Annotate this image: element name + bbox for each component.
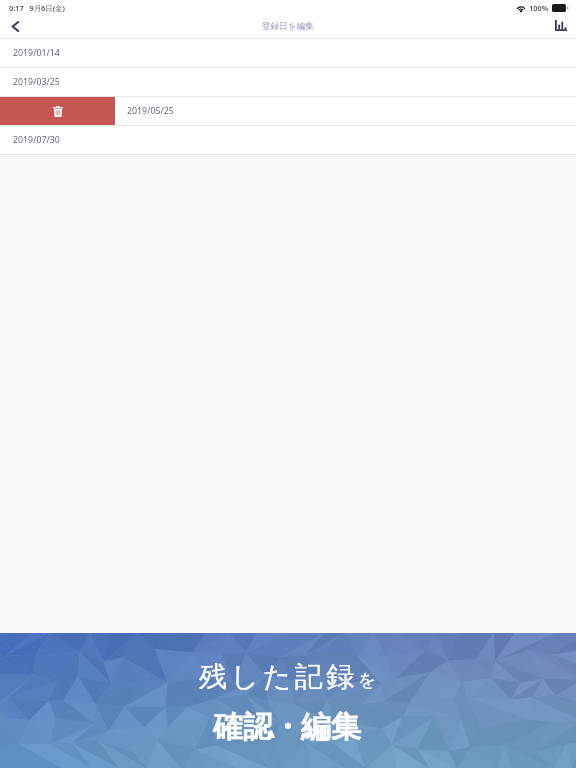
button[interactable]: 2019/03/25 bbox=[0, 68, 576, 96]
button[interactable]: 2019/07/30 bbox=[0, 126, 576, 154]
staticText: 2019/03/25 bbox=[13, 76, 60, 88]
button[interactable]: 2019/05/25 bbox=[115, 97, 576, 125]
button[interactable]: Statistics bbox=[546, 16, 576, 38]
staticText: 2019/05/25 bbox=[127, 105, 174, 117]
staticText: 編集 bbox=[301, 708, 361, 746]
button[interactable]: 2019/01/14 bbox=[0, 39, 576, 67]
button[interactable]: Delete bbox=[0, 97, 115, 125]
button[interactable]: 残した記録を確認・編集 bbox=[0, 633, 576, 768]
button[interactable]: Back bbox=[0, 16, 30, 38]
staticText: を bbox=[358, 669, 377, 692]
staticText: 登録日を編集 bbox=[262, 21, 314, 32]
staticText: 2019/07/30 bbox=[13, 134, 60, 146]
staticText: 100% bbox=[529, 3, 549, 13]
staticText: 確認 bbox=[213, 708, 273, 746]
staticText: ・ bbox=[272, 708, 302, 746]
staticText: 0:17 9月6日(金) bbox=[9, 3, 65, 13]
staticText: 残した記録 bbox=[199, 659, 358, 694]
staticText: 2019/01/14 bbox=[13, 47, 60, 59]
